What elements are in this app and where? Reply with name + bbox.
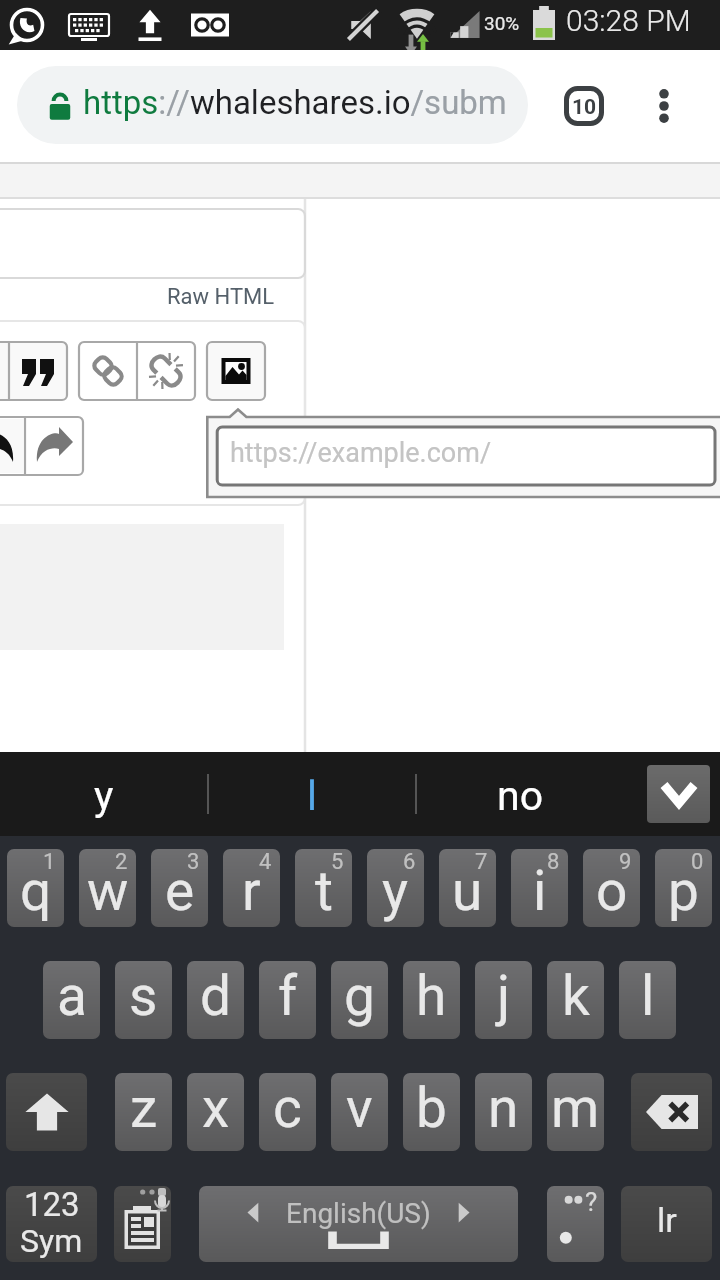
staticText: z bbox=[130, 1076, 158, 1140]
staticText: u bbox=[452, 859, 483, 923]
button[interactable]: k bbox=[547, 961, 604, 1039]
staticText: l bbox=[307, 772, 317, 820]
staticText: v bbox=[346, 1076, 373, 1140]
button[interactable]: w bbox=[79, 849, 136, 927]
staticText: n bbox=[488, 1076, 519, 1140]
button[interactable]: a bbox=[43, 961, 100, 1039]
staticText: 8 bbox=[547, 849, 560, 875]
button[interactable]: m bbox=[547, 1073, 604, 1151]
staticText: o bbox=[596, 859, 628, 923]
staticText: Raw HTML bbox=[167, 284, 275, 310]
staticText: 1 bbox=[43, 849, 56, 875]
staticText: k bbox=[562, 964, 590, 1028]
staticText: t bbox=[315, 859, 333, 923]
button[interactable]: o bbox=[583, 849, 640, 927]
button[interactable]: Hide keyboard bbox=[647, 765, 710, 823]
button[interactable]: Shift bbox=[6, 1073, 87, 1151]
button[interactable]: Symbols bbox=[6, 1186, 97, 1262]
button[interactable]: Tabs bbox=[550, 72, 618, 140]
staticText: 9 bbox=[619, 849, 632, 875]
button[interactable]: Space bbox=[199, 1186, 518, 1262]
staticText: 5 bbox=[331, 849, 344, 875]
staticText: English(US) bbox=[286, 1197, 431, 1230]
button[interactable]: f bbox=[259, 961, 316, 1039]
button[interactable]: v bbox=[331, 1073, 388, 1151]
staticText: 30% bbox=[484, 12, 520, 34]
button[interactable]: Clipboard bbox=[114, 1186, 171, 1262]
staticText: https://whaleshares.io/subm bbox=[83, 83, 507, 122]
staticText: f bbox=[278, 964, 298, 1028]
button[interactable]: l bbox=[619, 961, 676, 1039]
button[interactable]: u bbox=[439, 849, 496, 927]
button[interactable]: p bbox=[655, 849, 712, 927]
staticText: r bbox=[242, 859, 261, 923]
button[interactable]: More options bbox=[634, 76, 694, 136]
button[interactable]: https://whaleshares.io/subm bbox=[17, 66, 528, 144]
button[interactable]: c bbox=[259, 1073, 316, 1151]
staticText: y bbox=[94, 772, 114, 820]
button[interactable]: z bbox=[115, 1073, 172, 1151]
staticText: 6 bbox=[403, 849, 416, 875]
button[interactable]: s bbox=[115, 961, 172, 1039]
button[interactable]: g bbox=[331, 961, 388, 1039]
staticText: x bbox=[202, 1076, 230, 1140]
staticText: 4 bbox=[259, 849, 272, 875]
button[interactable]: lr bbox=[621, 1186, 712, 1262]
button[interactable]: q bbox=[7, 849, 64, 927]
staticText: ? bbox=[585, 1187, 598, 1217]
staticText: b bbox=[416, 1076, 447, 1140]
staticText: 03:28 PM bbox=[566, 3, 691, 38]
button[interactable]: Backspace bbox=[631, 1073, 712, 1151]
staticText: Sym bbox=[20, 1222, 83, 1259]
staticText: 0 bbox=[691, 849, 704, 875]
staticText: m bbox=[551, 1076, 600, 1140]
button[interactable]: t bbox=[295, 849, 352, 927]
button[interactable]: d bbox=[187, 961, 244, 1039]
button[interactable]: no bbox=[417, 752, 624, 836]
staticText: d bbox=[200, 964, 232, 1028]
button[interactable]: y bbox=[0, 752, 207, 836]
staticText: h bbox=[416, 964, 447, 1028]
button[interactable]: e bbox=[151, 849, 208, 927]
button[interactable]: r bbox=[223, 849, 280, 927]
button[interactable]: b bbox=[403, 1073, 460, 1151]
staticText: e bbox=[165, 859, 195, 923]
button[interactable]: n bbox=[475, 1073, 532, 1151]
staticText: l bbox=[641, 964, 655, 1028]
staticText: i bbox=[533, 859, 547, 923]
button[interactable]: i bbox=[511, 849, 568, 927]
staticText: c bbox=[273, 1076, 302, 1140]
staticText: lr bbox=[657, 1200, 677, 1240]
button[interactable]: j bbox=[475, 961, 532, 1039]
button[interactable]: y bbox=[367, 849, 424, 927]
staticText: g bbox=[344, 964, 375, 1028]
staticText: j bbox=[497, 964, 511, 1028]
staticText: 10 bbox=[572, 95, 597, 120]
staticText: a bbox=[57, 964, 87, 1028]
staticText: w bbox=[87, 859, 129, 923]
button[interactable]: x bbox=[187, 1073, 244, 1151]
staticText: y bbox=[382, 859, 409, 923]
staticText: https://example.com/ bbox=[230, 437, 492, 469]
staticText: no bbox=[497, 772, 544, 820]
staticText: 2 bbox=[115, 849, 128, 875]
staticText: q bbox=[20, 859, 52, 923]
button[interactable]: Period bbox=[547, 1186, 604, 1262]
button[interactable]: l bbox=[209, 752, 415, 836]
staticText: p bbox=[668, 859, 699, 923]
staticText: 7 bbox=[475, 849, 488, 875]
staticText: 3 bbox=[187, 849, 200, 875]
button[interactable]: h bbox=[403, 961, 460, 1039]
staticText: s bbox=[129, 964, 158, 1028]
staticText: 123 bbox=[24, 1186, 80, 1224]
